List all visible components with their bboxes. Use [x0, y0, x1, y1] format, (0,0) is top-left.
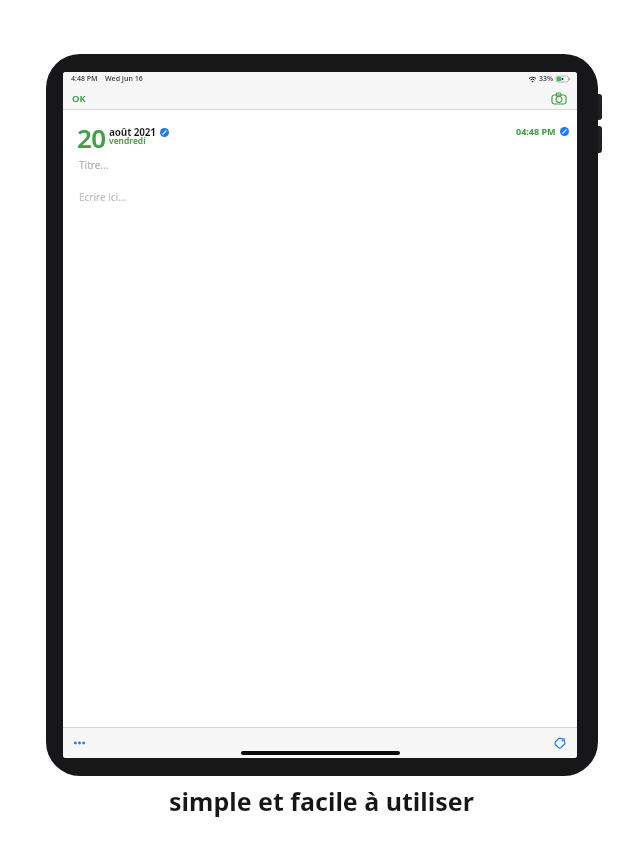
button[interactable]	[552, 734, 569, 751]
staticText: août 2021	[109, 125, 156, 139]
staticText: Wed Jun 16	[105, 74, 143, 84]
button[interactable]: 04:48 PM	[516, 125, 569, 137]
button[interactable]: OK	[67, 87, 91, 110]
staticText: vendredi	[109, 135, 146, 147]
staticText: 4:48 PM	[71, 74, 98, 84]
staticText: 33%	[539, 74, 554, 84]
button[interactable]: Ecrire ici...	[79, 190, 127, 204]
staticText: OK	[72, 92, 86, 105]
staticText: 20	[77, 120, 106, 155]
button[interactable]: Titre...	[79, 158, 109, 172]
button[interactable]	[160, 128, 169, 137]
staticText: 04:48 PM	[516, 125, 556, 137]
staticText: simple et facile à utiliser	[169, 784, 474, 818]
button[interactable]	[71, 738, 88, 748]
button[interactable]	[548, 89, 570, 108]
